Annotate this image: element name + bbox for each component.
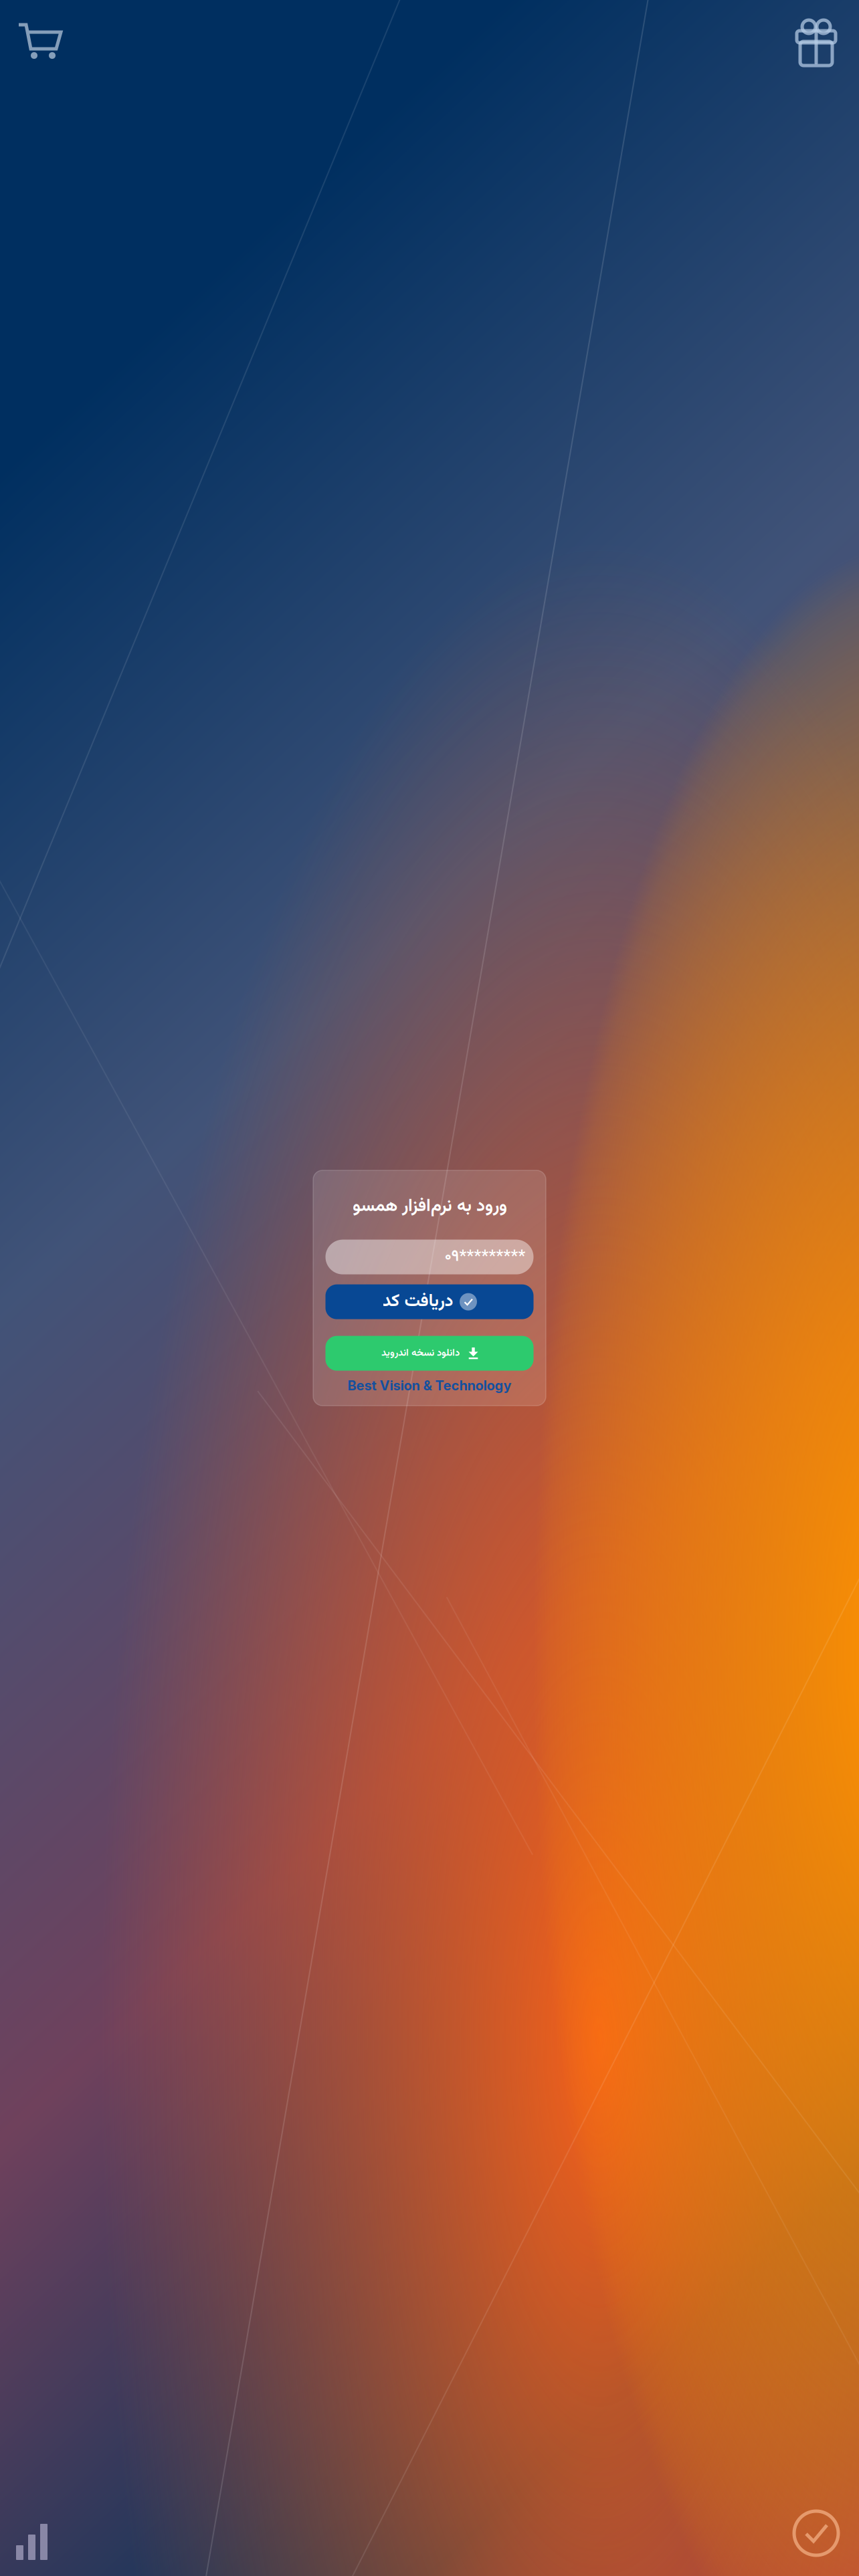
button[interactable]: Gifts	[773, 0, 859, 86]
staticText: ورود به نرم‌افزار همسو	[352, 1193, 507, 1220]
button[interactable]: Status	[773, 2490, 859, 2576]
staticText: Best Vision & Technology	[348, 1377, 511, 1394]
button[interactable]: دانلود نسخه اندروید	[325, 1336, 534, 1371]
button[interactable]: دریافت کد	[325, 1284, 534, 1319]
staticText: دانلود نسخه اندروید	[381, 1346, 459, 1361]
button[interactable]: Cart	[0, 0, 86, 86]
button[interactable]: Reports	[0, 2490, 86, 2576]
staticText: دریافت کد	[382, 1288, 453, 1315]
staticText: ۰۹*********	[445, 1244, 526, 1270]
